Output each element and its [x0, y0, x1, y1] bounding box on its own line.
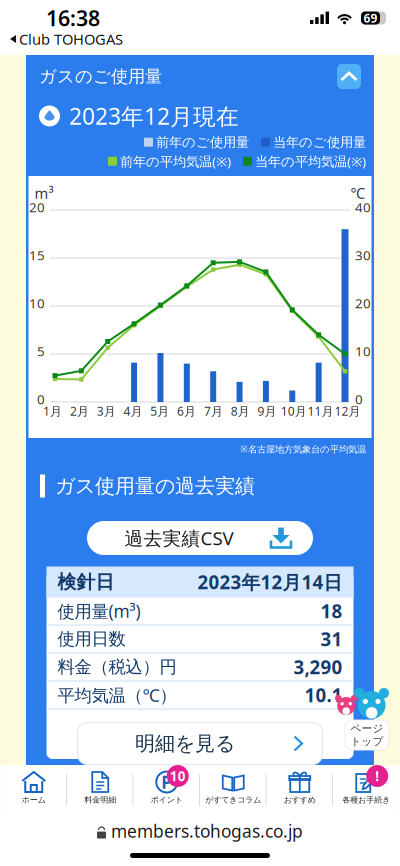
staticText: 10 [29, 294, 45, 312]
staticText: 0 [37, 390, 45, 408]
staticText: 2023年12月14日 [197, 570, 342, 594]
button[interactable]: ホーム [0, 765, 67, 810]
staticText: 検針日 [57, 570, 114, 593]
staticText: 69 [363, 10, 377, 26]
staticText: 5月 [150, 403, 169, 419]
staticText: 料金（税込）円 [57, 656, 176, 678]
staticText: 過去実績CSV [124, 526, 233, 550]
staticText: 8月 [231, 403, 250, 419]
staticText: 当年の平均気温(※) [255, 152, 366, 170]
staticText: 1月 [43, 403, 62, 419]
staticText: 12月 [334, 403, 360, 419]
button[interactable]: ページトップ [335, 688, 389, 758]
staticText: ℃ [350, 183, 365, 203]
button[interactable]: 明細を見る [77, 722, 322, 764]
staticText: P [161, 770, 172, 793]
staticText: 前年の平均気温(※) [120, 152, 231, 170]
staticText: 18 [320, 599, 342, 623]
staticText: ページ [350, 722, 383, 735]
staticText: 11月 [308, 403, 334, 419]
staticText: 各種お手続き [342, 795, 390, 805]
staticText: 5 [37, 342, 45, 360]
staticText: members.tohogas.co.jp [111, 819, 303, 842]
staticText: 3月 [97, 403, 116, 419]
staticText: 16:38 [46, 4, 100, 32]
staticText: m³ [34, 183, 53, 203]
staticText: 31 [320, 627, 342, 651]
button[interactable]: 過去実績CSV [87, 521, 313, 555]
staticText: がすてきコラム [205, 795, 261, 805]
staticText: 20 [29, 198, 45, 216]
staticText: 2月 [70, 403, 89, 419]
button[interactable]: Club TOHOGAS [10, 29, 123, 49]
staticText: 9月 [257, 403, 276, 419]
staticText: 10月 [281, 403, 307, 419]
staticText: ! [375, 767, 379, 785]
staticText: 0 [355, 390, 363, 408]
staticText: 7月 [204, 403, 223, 419]
staticText: トップ [350, 735, 383, 748]
staticText: 当年のご使用量 [273, 134, 366, 150]
staticText: 20 [355, 294, 371, 312]
staticText: 40 [355, 198, 371, 216]
staticText: ホーム [22, 795, 46, 805]
staticText: ガス使用量の過去実績 [55, 474, 255, 498]
staticText: Club TOHOGAS [19, 29, 123, 49]
button[interactable]: 閉じる [337, 64, 361, 89]
button[interactable]: がすてきコラム [200, 765, 266, 810]
staticText: 6月 [177, 403, 196, 419]
staticText: ガスのご使用量 [39, 66, 162, 87]
staticText: 15 [29, 246, 45, 264]
staticText: 料金明細 [84, 795, 116, 805]
staticText: 10 [355, 342, 371, 360]
staticText: 4月 [123, 403, 142, 419]
staticText: 2023年12月現在 [69, 101, 239, 131]
staticText: おすすめ [284, 795, 316, 805]
staticText: 前年のご使用量 [156, 134, 249, 150]
staticText: 10 [170, 767, 186, 785]
button[interactable]: ! [333, 765, 399, 810]
staticText: 使用日数 [57, 628, 125, 650]
button[interactable]: P [133, 765, 200, 810]
staticText: 3,290 [293, 655, 342, 679]
staticText: 明細を見る [135, 731, 235, 756]
staticText: 30 [355, 246, 371, 264]
staticText: ポイント [151, 795, 183, 805]
button[interactable]: 料金明細 [67, 765, 133, 810]
staticText: 平均気温（℃） [57, 683, 176, 706]
staticText: ※名古屋地方気象台の平均気温 [240, 443, 366, 455]
staticText: 使用量(m³) [57, 599, 140, 622]
button[interactable]: おすすめ [266, 765, 333, 810]
staticText: 10.1 [304, 683, 342, 707]
